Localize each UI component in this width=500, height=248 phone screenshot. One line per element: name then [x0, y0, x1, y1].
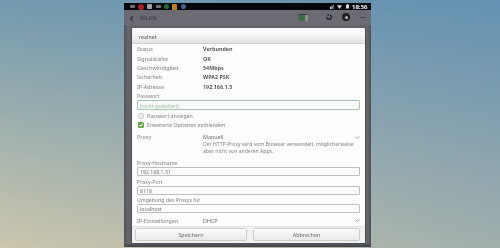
staticText: 18:56	[352, 3, 368, 10]
button[interactable]: Abbrechen	[253, 228, 360, 241]
button[interactable]	[137, 132, 360, 142]
button[interactable]: Settings	[340, 11, 352, 23]
button[interactable]: 8118	[137, 186, 360, 195]
staticText: Umgebung des Proxys für	[137, 196, 247, 203]
staticText: Der HTTP-Proxy wird vom Browser verwande…	[203, 141, 360, 155]
staticText: Proxy-Port	[137, 178, 247, 185]
button[interactable]	[137, 72, 360, 81]
staticText: IP-Einstellungen	[137, 217, 207, 224]
button[interactable]: Back to WLAN list	[126, 10, 157, 25]
button[interactable]	[137, 54, 360, 63]
staticText: realnet	[139, 33, 259, 40]
button[interactable]: localhost	[137, 204, 360, 213]
button[interactable]	[137, 215, 360, 225]
staticText: OK	[203, 55, 303, 62]
staticText: 192.168.1.31	[140, 168, 171, 175]
button[interactable]: Refresh	[323, 11, 335, 23]
staticText: Proxy-Hostname	[137, 159, 247, 166]
staticText: Abbrechen	[253, 231, 360, 238]
staticText: IP-Adresse	[137, 83, 207, 90]
button[interactable]: Speichern	[135, 228, 247, 241]
staticText: DHCP	[203, 217, 303, 224]
button[interactable]	[137, 63, 360, 72]
staticText: Verbunden	[203, 45, 303, 52]
staticText: Signalstärke	[137, 55, 207, 62]
button[interactable]: 192.168.1.31	[137, 167, 360, 176]
staticText: 8118	[140, 187, 152, 194]
staticText: Geschwindigkeit	[137, 64, 207, 71]
button[interactable]	[137, 44, 360, 53]
staticText: Sicherheit	[137, 73, 207, 80]
button[interactable]: Passwort anzeigen	[138, 111, 361, 120]
staticText: Manuell	[203, 133, 303, 140]
staticText: Passwort anzeigen	[147, 112, 193, 119]
staticText: localhost	[140, 205, 162, 212]
staticText: Status	[137, 45, 207, 52]
staticText: Passwort	[137, 92, 207, 99]
staticText: Speichern	[135, 231, 247, 238]
staticText: WPA2 PSK	[203, 73, 303, 80]
staticText: (nicht geändert)	[140, 102, 179, 109]
staticText: 54Mbps	[203, 64, 303, 71]
staticText: Erweiterte Optionen einblenden	[147, 121, 226, 128]
staticText: Proxy	[137, 133, 207, 140]
staticText: 192.168.1.5	[203, 83, 303, 90]
button[interactable]: WLAN on/off	[296, 10, 310, 25]
button[interactable]: (nicht geändert)	[137, 100, 360, 110]
button[interactable]	[137, 81, 360, 90]
button[interactable]: More options	[357, 11, 369, 23]
staticText: WLAN	[140, 14, 157, 22]
button[interactable]: Erweiterte Optionen einblenden	[138, 120, 361, 129]
